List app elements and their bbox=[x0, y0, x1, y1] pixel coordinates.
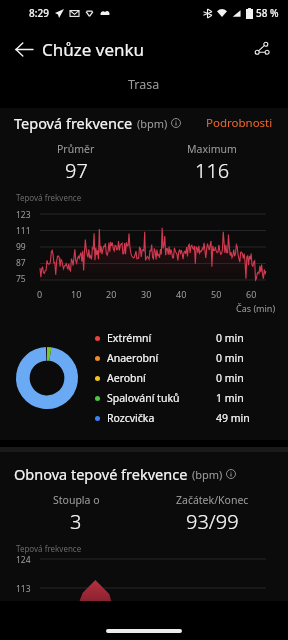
staticText: 116 bbox=[195, 157, 230, 184]
button[interactable]: Podrobnosti bbox=[204, 113, 275, 133]
staticText: Čas (min) bbox=[236, 302, 276, 314]
staticText: Rozcvička bbox=[107, 411, 216, 425]
staticText: 0 min bbox=[216, 331, 274, 345]
staticText: 123 bbox=[16, 209, 31, 221]
staticText: 30 bbox=[141, 288, 152, 300]
button[interactable]: Aerobní bbox=[95, 368, 274, 388]
staticText: Tepová frekvence bbox=[14, 113, 133, 133]
staticText: Začátek/Konec bbox=[176, 493, 249, 507]
staticText: 49 min bbox=[216, 411, 274, 425]
staticText: Podrobnosti bbox=[206, 115, 273, 131]
staticText: 113 bbox=[16, 583, 31, 595]
staticText: Obnova tepové frekvence bbox=[14, 464, 188, 484]
button[interactable]: Extrémní bbox=[95, 328, 274, 348]
staticText: Extrémní bbox=[107, 331, 216, 345]
staticText: 60 bbox=[246, 288, 257, 300]
staticText: 99 bbox=[16, 241, 26, 253]
staticText: 10 bbox=[71, 288, 82, 300]
staticText: 75 bbox=[16, 273, 26, 285]
staticText: Maximum bbox=[187, 142, 237, 156]
staticText: 87 bbox=[16, 257, 26, 269]
button[interactable]: Rozcvička bbox=[95, 408, 274, 428]
staticText: 0 min bbox=[216, 371, 274, 385]
staticText: 20 bbox=[106, 288, 117, 300]
staticText: Tepová frekvence bbox=[16, 543, 82, 554]
staticText: 97 bbox=[65, 157, 88, 184]
staticText: Trasa bbox=[128, 76, 160, 93]
staticText: Stoupla o bbox=[53, 493, 100, 507]
staticText: 124 bbox=[16, 554, 31, 566]
staticText: Spalování tuků bbox=[107, 391, 216, 405]
staticText: 50 bbox=[211, 288, 222, 300]
staticText: Chůze venku bbox=[42, 38, 145, 61]
staticText: 111 bbox=[16, 225, 31, 237]
staticText: (bpm) bbox=[137, 116, 168, 131]
button[interactable]: Anaerobní bbox=[95, 348, 274, 368]
staticText: Průměr bbox=[57, 142, 95, 156]
staticText: 0 bbox=[37, 288, 43, 300]
staticText: 0 min bbox=[216, 351, 274, 365]
button[interactable]: Trasa bbox=[13, 76, 275, 98]
staticText: 3 bbox=[70, 508, 82, 535]
staticText: 58 % bbox=[256, 6, 279, 20]
staticText: 1 min bbox=[216, 391, 274, 405]
button[interactable]: Back bbox=[6, 31, 42, 67]
staticText: 93/99 bbox=[186, 508, 239, 535]
button[interactable]: Share bbox=[244, 31, 280, 67]
staticText: Anaerobní bbox=[107, 351, 216, 365]
staticText: Tepová frekvence bbox=[16, 192, 82, 203]
staticText: (bpm) bbox=[192, 467, 223, 482]
button[interactable]: Spalování tuků bbox=[95, 388, 274, 408]
staticText: 40 bbox=[176, 288, 187, 300]
staticText: 8:29 bbox=[29, 6, 49, 20]
staticText: Aerobní bbox=[107, 371, 216, 385]
